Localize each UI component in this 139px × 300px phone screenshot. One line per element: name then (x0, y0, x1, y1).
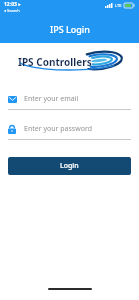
staticText: IPS Controllers (18, 55, 92, 69)
staticText: Enter your email (24, 94, 79, 104)
button[interactable]: Login (8, 157, 131, 175)
staticText: Enter your password (24, 124, 92, 134)
staticText: 12:03 ▸ (4, 1, 21, 8)
staticText: LTE (115, 3, 122, 8)
staticText: IPS Login (50, 23, 90, 35)
button[interactable]: Enter your email (8, 91, 131, 107)
staticText: Login (60, 161, 79, 171)
button[interactable]: Enter your password (8, 121, 131, 137)
staticText: ◂ Search (4, 8, 20, 13)
